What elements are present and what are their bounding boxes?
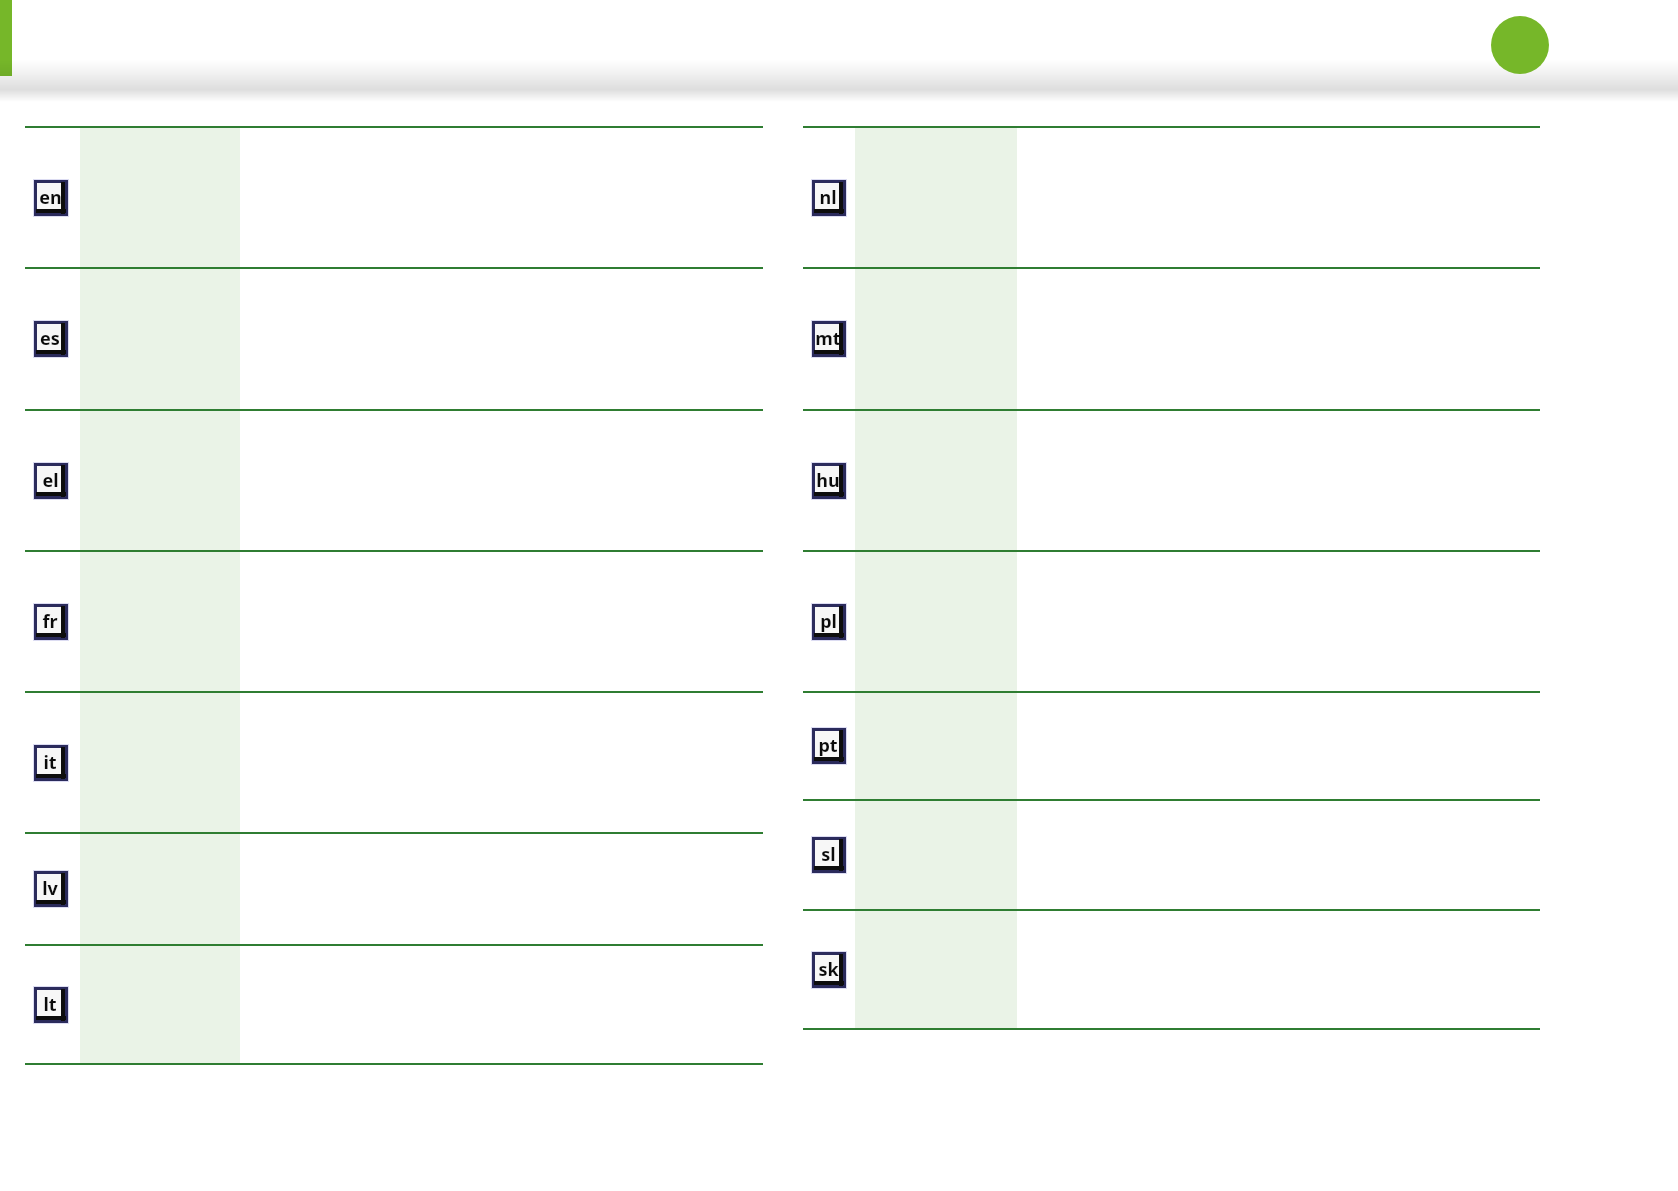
staticText: hu (816, 468, 840, 493)
staticText: es (40, 326, 60, 351)
staticText: en (39, 185, 62, 210)
staticText: el (42, 468, 59, 493)
button[interactable]: Language pl (803, 552, 1540, 691)
button[interactable]: Language el (33, 462, 69, 500)
staticText: it (43, 750, 57, 775)
button[interactable]: Language lv (25, 834, 763, 944)
button[interactable]: Language sl (811, 836, 847, 874)
button[interactable]: Language mt (803, 269, 1540, 409)
button[interactable]: Language en (25, 128, 763, 267)
staticText: nl (819, 185, 837, 210)
button[interactable]: Language sk (803, 911, 1540, 1028)
staticText: lt (43, 992, 57, 1017)
button[interactable]: Language pt (803, 693, 1540, 799)
staticText: sk (818, 957, 839, 982)
button[interactable]: Language mt (811, 320, 847, 358)
button[interactable]: Language fr (33, 603, 69, 641)
button[interactable]: Menu (1491, 16, 1549, 74)
button[interactable]: Language lv (33, 870, 69, 908)
button[interactable]: Language sk (811, 951, 847, 989)
button[interactable]: Language nl (811, 179, 847, 217)
button[interactable]: Language it (33, 744, 69, 782)
button[interactable]: Language es (25, 269, 763, 409)
staticText: fr (42, 609, 58, 634)
button[interactable]: Language hu (811, 462, 847, 500)
button[interactable]: Language lt (25, 946, 763, 1063)
button[interactable]: Language fr (25, 552, 763, 691)
button[interactable]: Language pl (811, 603, 847, 641)
staticText: sl (821, 842, 836, 867)
button[interactable]: Language pt (811, 727, 847, 765)
button[interactable]: Language it (25, 693, 763, 832)
button[interactable]: Language en (33, 179, 69, 217)
staticText: mt (815, 326, 841, 351)
staticText: pl (820, 609, 837, 634)
button[interactable]: Language lt (33, 986, 69, 1024)
staticText: lv (42, 876, 58, 901)
button[interactable]: Language el (25, 411, 763, 550)
button[interactable]: Language nl (803, 128, 1540, 267)
staticText: pt (818, 733, 838, 758)
button[interactable]: Language sl (803, 801, 1540, 909)
button[interactable]: Language hu (803, 411, 1540, 550)
button[interactable]: Language es (33, 320, 69, 358)
